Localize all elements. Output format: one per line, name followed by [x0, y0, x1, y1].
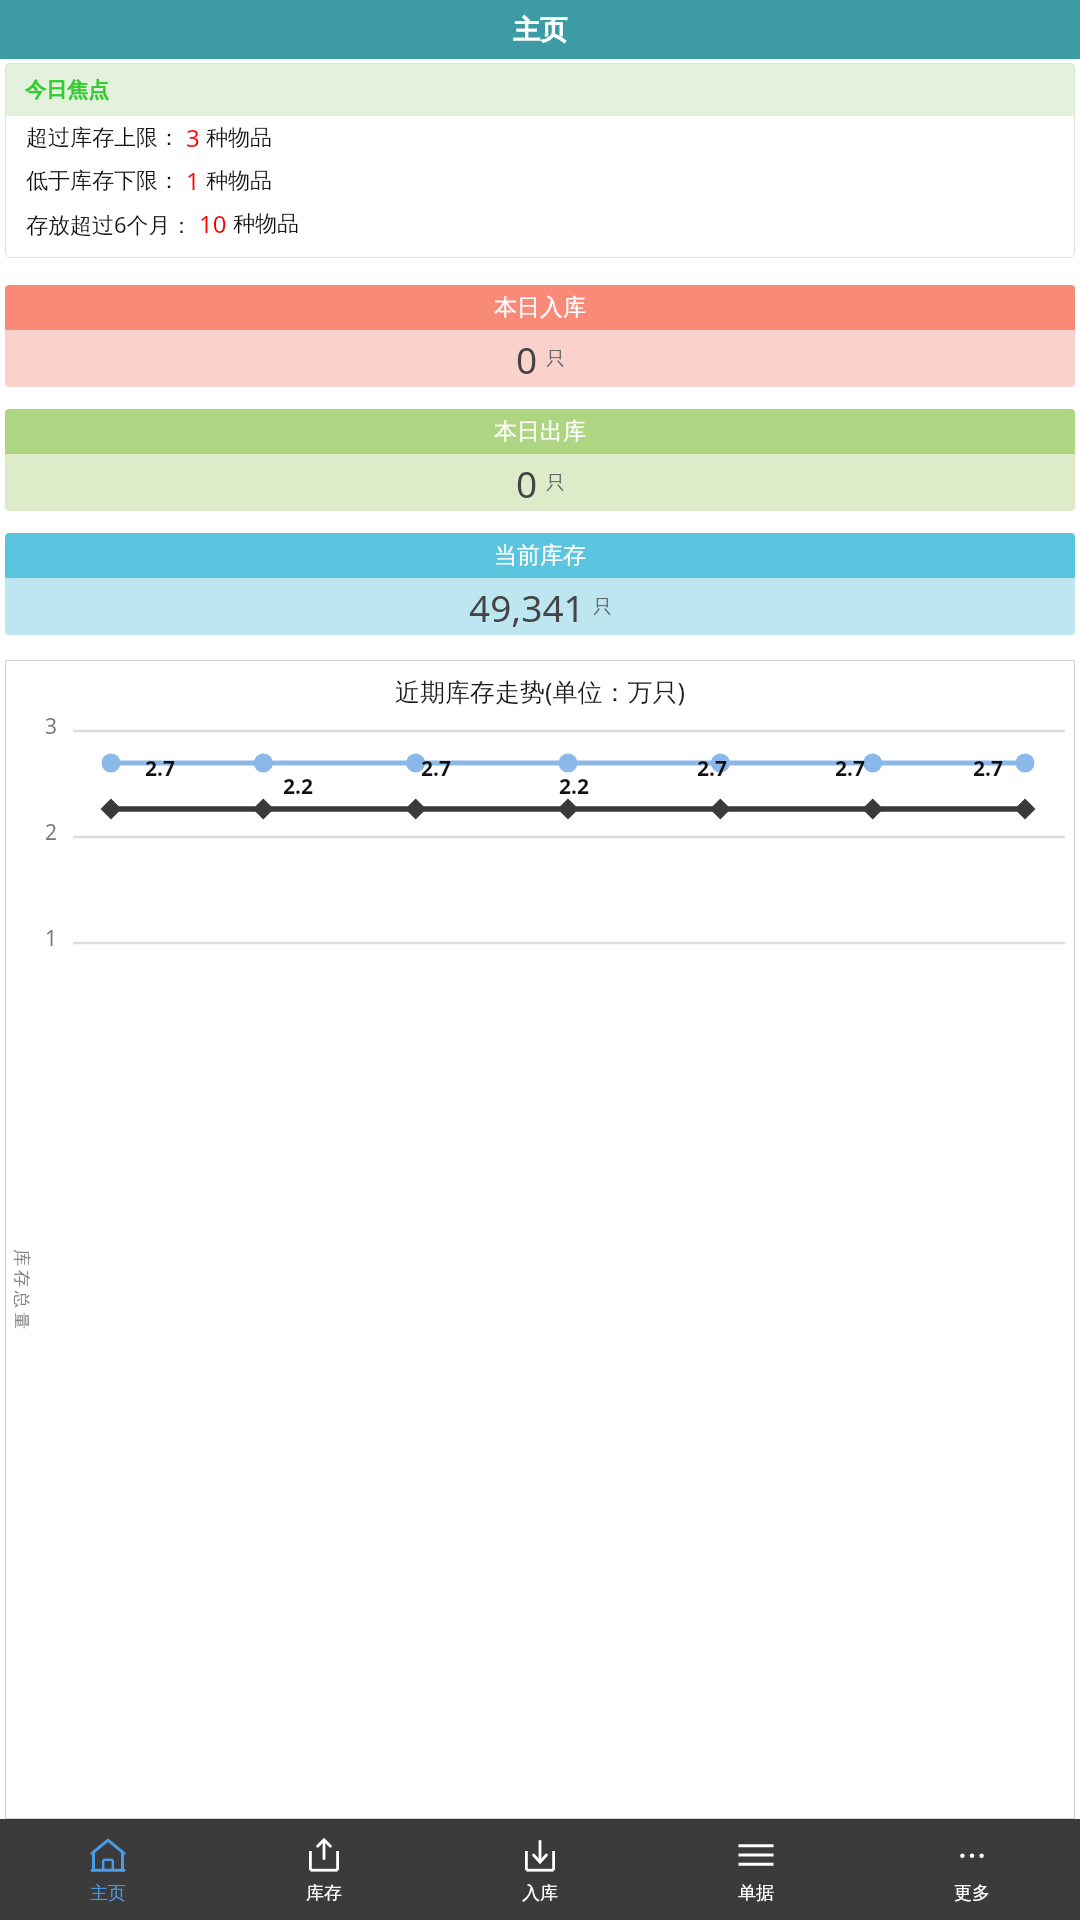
staticText: 存 — [11, 1270, 32, 1287]
staticText: 近期库存走势(单位：万只) — [395, 674, 686, 708]
staticText: 2.7 — [421, 754, 451, 783]
staticText: 总 — [11, 1291, 32, 1308]
staticText: 库存 — [306, 1882, 342, 1905]
staticText: 3 — [45, 712, 65, 741]
staticText: 单据 — [738, 1882, 774, 1905]
button[interactable]: 本日入库 — [5, 285, 1075, 387]
staticText: 更多 — [954, 1882, 990, 1905]
staticText: 2.2 — [559, 772, 589, 801]
staticText: 只 — [546, 347, 565, 371]
button[interactable]: 本日出库 — [5, 409, 1075, 511]
staticText: 10 — [199, 207, 227, 240]
staticText: 只 — [546, 471, 565, 495]
staticText: 49,341 — [469, 582, 585, 632]
button[interactable]: 库存 — [216, 1819, 432, 1920]
button[interactable]: 入库 — [432, 1819, 648, 1920]
button[interactable]: 更多 — [864, 1819, 1080, 1920]
staticText: 2.7 — [973, 754, 1003, 783]
staticText: 存放超过6个月： — [26, 209, 193, 239]
staticText: 2.7 — [697, 754, 727, 783]
staticText: 1 — [186, 164, 200, 197]
staticText: 当前库存 — [494, 541, 586, 570]
staticText: 种物品 — [206, 167, 272, 195]
staticText: 低于库存下限： — [26, 167, 180, 195]
staticText: 只 — [593, 595, 612, 619]
button[interactable]: 近期库存走势(单位：万只) — [5, 660, 1075, 1819]
staticText: 0 — [516, 458, 538, 508]
staticText: 2.7 — [145, 754, 175, 783]
staticText: 0 — [516, 334, 538, 384]
button[interactable]: 今日焦点 — [5, 63, 1075, 258]
button[interactable]: 主页 — [0, 1819, 216, 1920]
button[interactable]: 当前库存 — [5, 533, 1075, 635]
staticText: 2.2 — [283, 772, 313, 801]
staticText: 3 — [186, 121, 200, 154]
staticText: 主页 — [513, 13, 567, 47]
staticText: 本日入库 — [494, 293, 586, 322]
staticText: 今日焦点 — [25, 77, 109, 103]
staticText: 2 — [45, 818, 65, 847]
staticText: 入库 — [522, 1882, 558, 1905]
staticText: 种物品 — [206, 124, 272, 152]
staticText: 库 — [11, 1249, 32, 1266]
button[interactable]: 单据 — [648, 1819, 864, 1920]
staticText: 本日出库 — [494, 417, 586, 446]
staticText: 1 — [45, 924, 65, 953]
staticText: 量 — [11, 1312, 32, 1329]
staticText: 2.7 — [835, 754, 865, 783]
staticText: 主页 — [90, 1882, 126, 1905]
staticText: 超过库存上限： — [26, 124, 180, 152]
staticText: 种物品 — [233, 210, 299, 238]
